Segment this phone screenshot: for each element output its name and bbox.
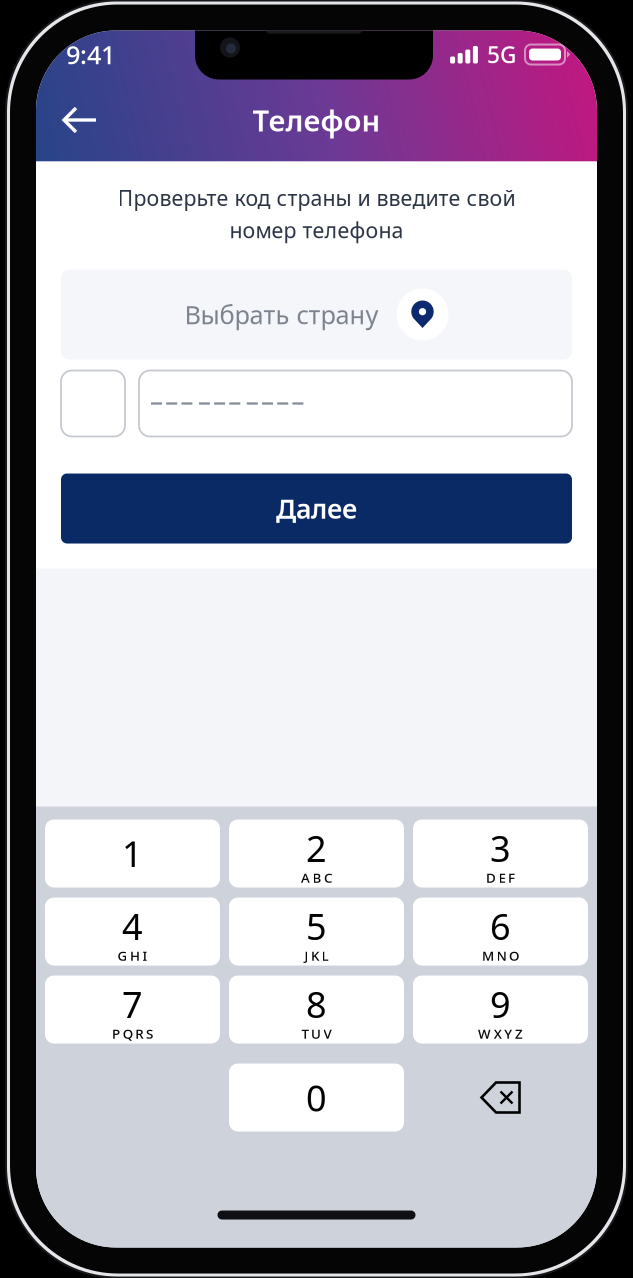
button[interactable]: Далее	[61, 473, 572, 543]
button[interactable]: 6	[413, 897, 588, 965]
staticText: Далее	[276, 491, 357, 526]
staticText: 7	[122, 980, 143, 1028]
button[interactable]: Выбрать страну	[61, 269, 572, 359]
button[interactable]: 2	[229, 819, 404, 887]
staticText: U	[311, 1025, 321, 1042]
staticText: H	[130, 947, 140, 964]
staticText: L	[322, 947, 329, 964]
staticText: номер телефона	[229, 216, 403, 244]
staticText: V	[324, 1025, 332, 1042]
staticText: 2	[306, 824, 327, 872]
staticText: M	[482, 947, 494, 964]
staticText: J	[304, 947, 308, 964]
staticText: Телефон	[252, 100, 380, 139]
staticText: E	[498, 869, 505, 886]
staticText: Z	[515, 1025, 523, 1042]
staticText: C	[324, 869, 332, 886]
staticText: K	[311, 947, 319, 964]
button[interactable]: 8	[229, 975, 404, 1043]
staticText: B	[312, 869, 321, 886]
staticText: G	[117, 947, 127, 964]
button[interactable]: 1	[45, 819, 220, 887]
staticText: 8	[306, 980, 327, 1028]
staticText: N	[496, 947, 506, 964]
staticText: 5G	[487, 39, 516, 69]
staticText: T	[301, 1025, 308, 1042]
button[interactable]: Delete	[413, 1063, 588, 1131]
staticText: P	[112, 1025, 120, 1042]
staticText: 6	[490, 902, 511, 950]
staticText: A	[301, 869, 310, 886]
staticText: Q	[123, 1025, 133, 1042]
button[interactable]: 0	[229, 1063, 404, 1131]
button[interactable]: 7	[45, 975, 220, 1043]
button[interactable]: 5	[229, 897, 404, 965]
button[interactable]: 4	[45, 897, 220, 965]
button[interactable]: Back	[46, 93, 114, 147]
staticText: 4	[122, 902, 143, 950]
staticText: 9:41	[66, 38, 115, 71]
staticText: I	[143, 947, 148, 964]
staticText: Выбрать страну	[184, 298, 378, 331]
staticText: Проверьте код страны и введите свой	[117, 183, 515, 212]
button[interactable]: 3	[413, 819, 588, 887]
staticText: O	[509, 947, 519, 964]
staticText: S	[146, 1025, 153, 1042]
staticText: W	[478, 1025, 491, 1042]
staticText: 0	[306, 1074, 327, 1121]
staticText: Y	[504, 1025, 512, 1042]
staticText: F	[508, 869, 515, 886]
staticText: X	[494, 1025, 502, 1042]
staticText: 9	[490, 980, 511, 1028]
staticText: 1	[122, 830, 143, 877]
staticText: 3	[490, 824, 511, 872]
button[interactable]: 9	[413, 975, 588, 1043]
staticText: D	[486, 869, 496, 886]
staticText: 5	[306, 902, 327, 950]
staticText: R	[135, 1025, 143, 1042]
